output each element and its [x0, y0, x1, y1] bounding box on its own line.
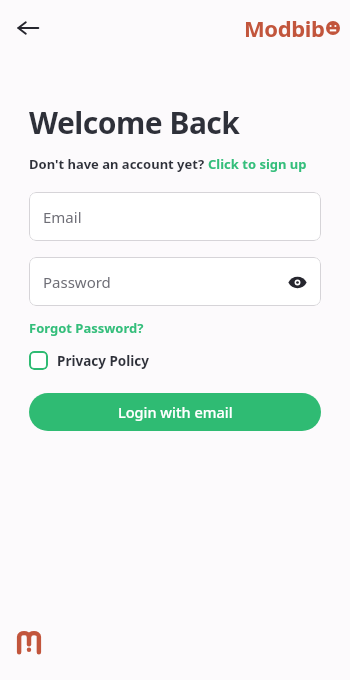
staticText: Click to sign up: [208, 155, 307, 173]
button[interactable]: Show password: [279, 264, 315, 300]
staticText: Login with email: [118, 402, 233, 422]
staticText: Privacy Policy: [57, 352, 149, 370]
button[interactable]: Forgot Password?: [29, 319, 144, 337]
staticText: Welcome Back: [29, 102, 240, 143]
button[interactable]: Email: [29, 192, 321, 241]
button[interactable]: Privacy Policy: [29, 351, 149, 370]
button[interactable]: Modbibo logo: [244, 13, 340, 43]
staticText: Email: [43, 207, 82, 227]
button[interactable]: Login with email: [29, 393, 321, 431]
staticText: Forgot Password?: [29, 319, 144, 337]
button[interactable]: Password: [29, 257, 321, 306]
button[interactable]: Back: [6, 6, 50, 50]
staticText: Don't have an account yet?: [29, 155, 208, 173]
staticText: Modbib: [244, 13, 325, 43]
button[interactable]: Click to sign up: [208, 155, 307, 173]
other: Modbibo mark: [14, 628, 44, 658]
staticText: Password: [43, 272, 111, 292]
